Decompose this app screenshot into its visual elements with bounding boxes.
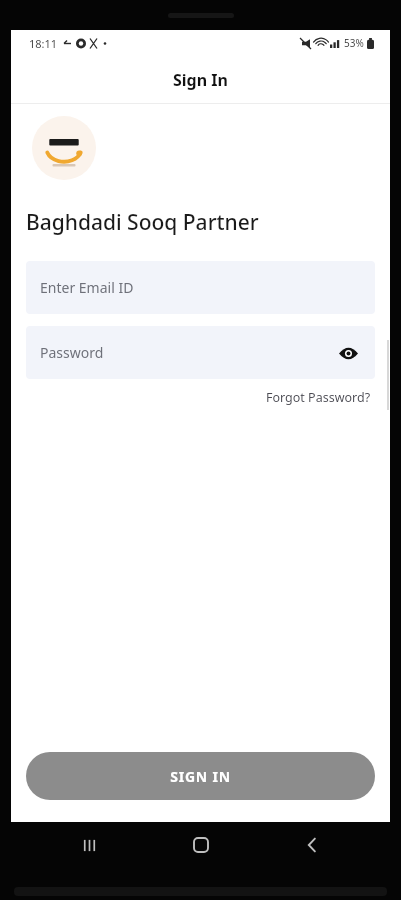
staticText: Forgot Password? [266,389,371,406]
staticText: 18:11 [29,36,58,51]
staticText: Baghdadi Sooq Partner [26,208,259,237]
button[interactable]: Enter Email ID [26,261,375,314]
staticText: Enter Email ID [40,278,134,297]
button[interactable]: Show password [331,336,365,370]
staticText: Sign In [173,69,228,91]
button[interactable]: Back [289,822,335,868]
button[interactable]: Forgot Password? [262,385,375,410]
button[interactable]: Home [178,822,224,868]
button[interactable]: SIGN IN [26,752,375,800]
staticText: 53% [344,36,364,50]
staticText: SIGN IN [170,767,231,786]
button[interactable]: Password [26,326,375,379]
staticText: Password [40,343,104,362]
button[interactable]: Recent apps [66,822,112,868]
